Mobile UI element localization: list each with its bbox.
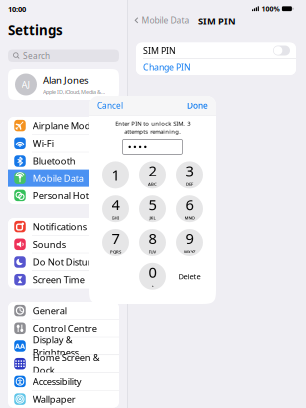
staticText: Apple ID, iCloud, Media &… — [43, 88, 105, 95]
staticText: SIM PIN — [198, 14, 236, 27]
button[interactable]: Control Centre — [8, 320, 119, 337]
staticText: Display & Brightness — [33, 333, 79, 359]
staticText: Bluetooth — [33, 155, 76, 167]
staticText: GHI — [111, 215, 119, 221]
staticText: Cancel — [97, 100, 123, 111]
button[interactable]: AA — [8, 337, 119, 355]
staticText: 2 — [148, 161, 156, 181]
staticText: + — [151, 283, 153, 288]
staticText: Sounds — [33, 238, 66, 251]
staticText: Settings — [8, 21, 63, 39]
staticText: Enter PIN to unlock SIM. 3 attempts rema… — [115, 119, 190, 135]
staticText: Home Screen & Dock — [33, 351, 100, 376]
button[interactable]: Home Screen & Dock — [8, 355, 119, 372]
button[interactable]: Notifications — [8, 218, 119, 235]
button[interactable]: 0 — [139, 263, 166, 290]
button[interactable]: Wallpaper — [8, 390, 119, 408]
staticText: 4 — [111, 194, 119, 214]
button[interactable]: Airplane Mode — [8, 117, 119, 134]
staticText: Mobile Data — [141, 14, 189, 26]
staticText: 7 — [111, 228, 119, 248]
button[interactable]: SIM PIN — [136, 42, 296, 58]
staticText: Alan Jones — [43, 73, 89, 87]
staticText: 6 — [185, 194, 193, 214]
staticText: JKL — [149, 215, 155, 221]
staticText: ABC — [148, 181, 157, 187]
staticText: Wallpaper — [33, 393, 76, 405]
staticText: MNO — [184, 215, 194, 221]
staticText: Done — [187, 100, 208, 111]
button[interactable]: Done — [187, 95, 216, 116]
button[interactable]: Accessibility — [8, 373, 119, 390]
button[interactable]: 9 — [176, 229, 203, 256]
staticText: Search — [23, 50, 50, 61]
staticText: Wi-Fi — [33, 137, 54, 150]
staticText: 1 — [111, 165, 119, 185]
button[interactable]: 5 — [139, 195, 166, 222]
staticText: Airplane Mode — [33, 119, 96, 132]
staticText: 3 — [185, 161, 193, 181]
staticText: SIM PIN — [143, 44, 176, 56]
staticText: 5 — [148, 194, 156, 214]
staticText: WXYZ — [184, 249, 195, 255]
staticText: Screen Time — [33, 273, 85, 286]
button[interactable]: Personal Hotspot — [8, 187, 119, 204]
staticText: Mobile Data — [33, 172, 84, 184]
staticText: Notifications — [33, 220, 87, 233]
button[interactable]: General — [8, 302, 119, 319]
button[interactable]: 8 — [139, 229, 166, 256]
button[interactable]: 3 — [176, 161, 203, 188]
staticText: 0 — [148, 262, 156, 282]
staticText: PQRS — [110, 249, 121, 255]
button[interactable]: Sounds — [8, 236, 119, 253]
staticText: 8 — [148, 228, 156, 248]
staticText: 10:00 — [8, 4, 26, 14]
button[interactable]: 1 — [102, 161, 129, 188]
button[interactable]: 2 — [139, 161, 166, 188]
staticText: Change PIN — [143, 61, 191, 73]
staticText: AA — [15, 341, 25, 351]
button[interactable]: Mobile Data — [134, 14, 189, 26]
staticText: 100% — [261, 4, 279, 13]
staticText: DEF — [186, 181, 193, 187]
staticText: General — [33, 304, 67, 317]
button[interactable]: Cancel — [89, 95, 123, 116]
button[interactable]: Bluetooth — [8, 152, 119, 170]
staticText: 9 — [185, 228, 193, 248]
button[interactable]: Screen Time — [8, 271, 119, 288]
button[interactable]: AJ — [8, 69, 119, 100]
staticText: AJ — [21, 78, 30, 91]
button[interactable]: 6 — [176, 195, 203, 222]
staticText: Do Not Disturb — [33, 256, 98, 268]
button[interactable]: 4 — [102, 195, 129, 222]
button[interactable]: Mobile Data — [8, 170, 119, 187]
staticText: TUV — [148, 249, 156, 255]
button[interactable]: 7 — [102, 229, 129, 256]
staticText: Control Centre — [33, 322, 97, 335]
staticText: Accessibility — [33, 375, 82, 388]
button[interactable]: Do Not Disturb — [8, 253, 119, 271]
button[interactable]: Wi-Fi — [8, 135, 119, 152]
button[interactable]: Delete — [176, 263, 203, 290]
staticText: Delete — [178, 271, 200, 281]
staticText: Personal Hotspot — [33, 189, 108, 202]
button[interactable]: Change PIN — [136, 59, 296, 75]
